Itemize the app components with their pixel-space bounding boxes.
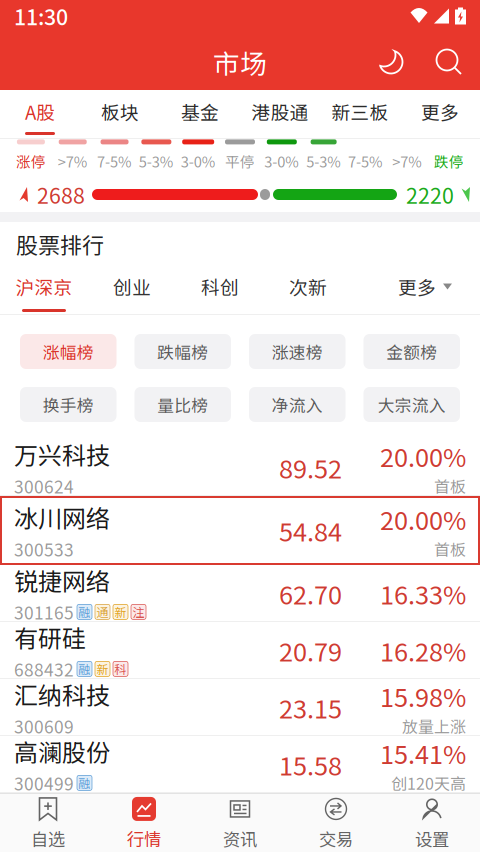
button[interactable]: 资讯	[192, 793, 288, 852]
staticText: 科	[114, 660, 126, 678]
staticText: 5-3%	[139, 150, 174, 172]
staticText: 金额榜	[386, 339, 437, 363]
button[interactable]: 板块	[80, 90, 160, 138]
staticText: 301165	[14, 599, 74, 624]
staticText: 7-5%	[97, 150, 132, 172]
staticText: 创120天高	[391, 771, 466, 794]
button[interactable]: 新三板	[320, 90, 400, 138]
staticText: 更多	[421, 98, 459, 125]
staticText: 资讯	[223, 826, 257, 851]
button[interactable]: 创业	[88, 266, 176, 314]
button[interactable]: 交易	[288, 793, 384, 852]
button[interactable]: 锐捷网络	[0, 565, 480, 622]
button[interactable]: 更多	[386, 266, 464, 314]
button[interactable]: 高澜股份	[0, 736, 480, 793]
button[interactable]: 自选	[0, 793, 96, 852]
staticText: 新	[96, 660, 108, 678]
button[interactable]: 涨幅榜	[20, 334, 116, 369]
staticText: 股票排行	[16, 228, 104, 260]
staticText: 300499	[14, 770, 74, 795]
button[interactable]: 有研硅	[0, 622, 480, 679]
staticText: 锐捷网络	[14, 563, 110, 597]
button[interactable]: 换手榜	[20, 387, 116, 422]
staticText: 基金	[181, 98, 219, 125]
staticText: 3-0%	[264, 150, 299, 172]
staticText: 行情	[127, 826, 161, 851]
staticText: 净流入	[272, 392, 323, 416]
staticText: 15.98%	[380, 678, 466, 714]
staticText: 首板	[434, 474, 466, 497]
staticText: 688432	[14, 656, 74, 681]
staticText: 300609	[14, 713, 74, 738]
staticText: 高澜股份	[14, 734, 110, 768]
button[interactable]: 行情	[96, 793, 192, 852]
button[interactable]: Night mode	[368, 39, 414, 85]
staticText: 有研硅	[14, 620, 86, 654]
button[interactable]: Search	[426, 39, 472, 85]
staticText: 54.84	[279, 512, 342, 549]
staticText: 量比榜	[157, 392, 208, 416]
staticText: 创业	[113, 273, 151, 300]
staticText: 更多	[398, 273, 436, 300]
staticText: 首板	[434, 537, 466, 560]
staticText: 20.00%	[380, 438, 466, 474]
button[interactable]: 净流入	[249, 387, 345, 422]
button[interactable]: 金额榜	[363, 334, 460, 369]
button[interactable]: 大宗流入	[363, 387, 460, 422]
staticText: 融	[78, 660, 90, 678]
staticText: 15.41%	[380, 735, 466, 771]
button[interactable]: 量比榜	[134, 387, 231, 422]
button[interactable]: 更多	[400, 90, 480, 138]
button[interactable]: A股	[0, 90, 80, 138]
staticText: 港股通	[251, 98, 308, 125]
staticText: 次新	[289, 273, 327, 300]
staticText: 16.28%	[380, 632, 466, 669]
staticText: 注	[132, 603, 144, 621]
button[interactable]: 设置	[384, 793, 480, 852]
button[interactable]: 跌幅榜	[134, 334, 231, 369]
staticText: 市场	[213, 43, 267, 81]
button[interactable]: 涨速榜	[249, 334, 345, 369]
staticText: 5-3%	[306, 150, 341, 172]
button[interactable]: 次新	[264, 266, 352, 314]
button[interactable]: 冰川网络	[0, 496, 480, 565]
staticText: 融	[78, 774, 90, 792]
staticText: 11:30	[14, 1, 68, 31]
staticText: 15.58	[279, 746, 342, 783]
staticText: 冰川网络	[14, 500, 110, 534]
staticText: >7%	[392, 150, 422, 172]
staticText: 科创	[201, 273, 239, 300]
staticText: 新	[114, 603, 126, 621]
staticText: 沪深京	[15, 273, 72, 300]
staticText: 放量上涨	[402, 714, 466, 737]
staticText: 涨速榜	[272, 339, 323, 363]
staticText: 300533	[14, 536, 74, 561]
staticText: 23.15	[279, 689, 342, 726]
staticText: 3-0%	[181, 150, 216, 172]
staticText: 自选	[31, 826, 65, 851]
staticText: 设置	[415, 826, 449, 851]
staticText: 万兴科技	[14, 437, 110, 471]
staticText: 大宗流入	[378, 392, 446, 416]
staticText: A股	[25, 98, 55, 125]
staticText: 平停	[225, 150, 255, 172]
staticText: 62.70	[279, 575, 342, 612]
button[interactable]: 基金	[160, 90, 240, 138]
staticText: 板块	[101, 98, 139, 125]
staticText: 2220	[406, 179, 454, 210]
staticText: >7%	[58, 150, 88, 172]
staticText: 换手榜	[43, 392, 94, 416]
staticText: 20.00%	[380, 501, 466, 537]
staticText: 7-5%	[348, 150, 383, 172]
button[interactable]: 沪深京	[0, 266, 88, 314]
button[interactable]: 万兴科技	[0, 439, 480, 496]
staticText: 跌幅榜	[157, 339, 208, 363]
staticText: 300624	[14, 473, 74, 498]
button[interactable]: 港股通	[240, 90, 320, 138]
staticText: 2688	[37, 179, 85, 210]
button[interactable]: 科创	[176, 266, 264, 314]
staticText: 89.52	[279, 449, 342, 486]
button[interactable]: 汇纳科技	[0, 679, 480, 736]
staticText: 涨幅榜	[43, 339, 94, 363]
staticText: 交易	[319, 826, 353, 851]
